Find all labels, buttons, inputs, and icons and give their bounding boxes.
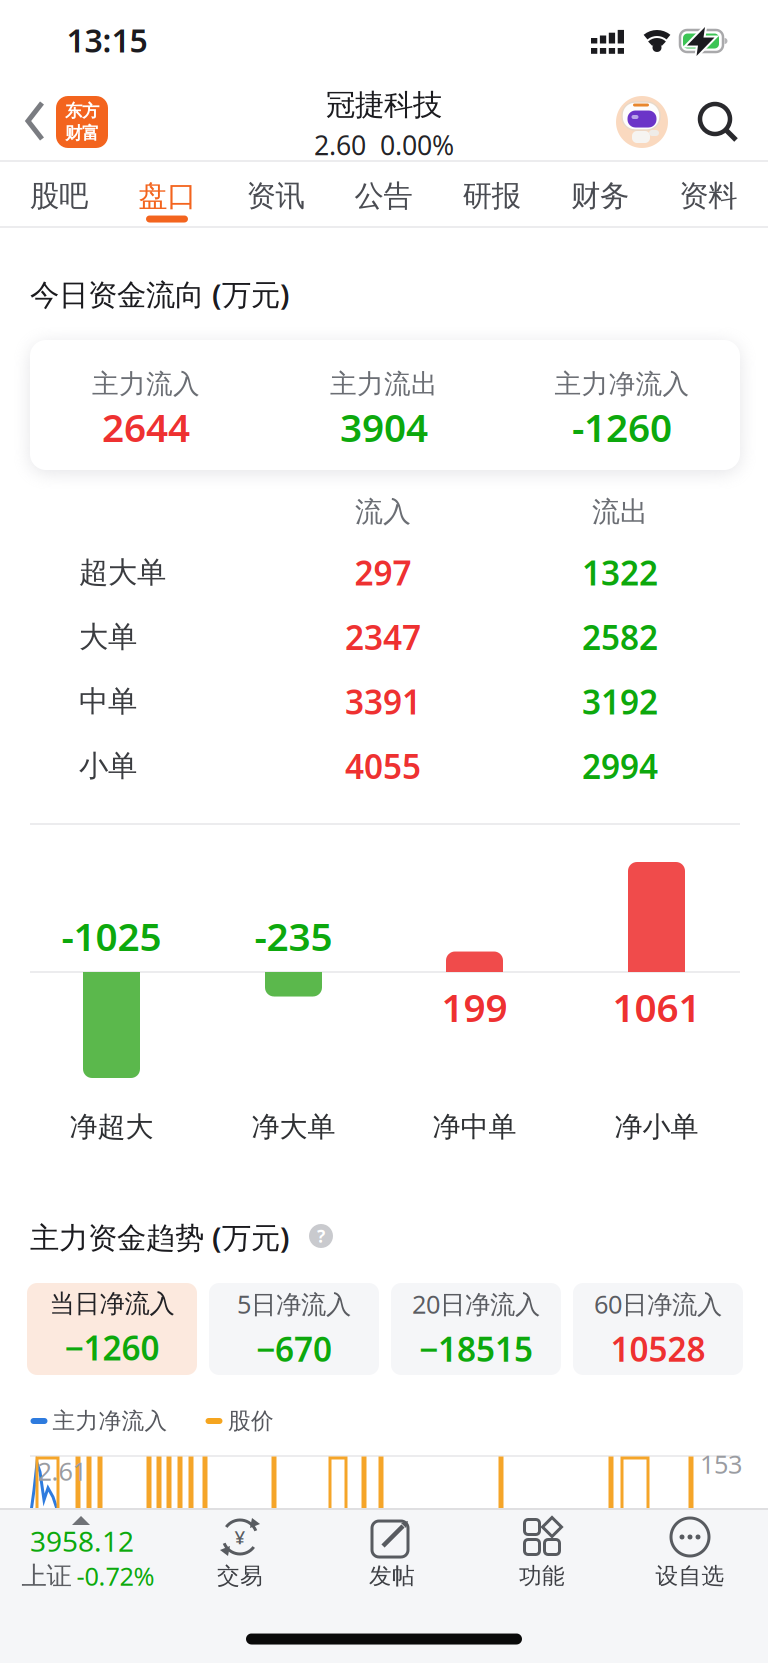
staticText: ¥ — [234, 1525, 245, 1549]
staticText: 2.60 0.00% — [314, 127, 454, 163]
button[interactable]: 资料 — [679, 178, 737, 214]
staticText: 发帖 — [369, 1562, 415, 1590]
staticText: 60日净流入 — [594, 1287, 722, 1321]
staticText: 199 — [441, 981, 507, 1033]
staticText: -235 — [254, 910, 332, 962]
staticText: 3904 — [340, 401, 428, 453]
staticText: −670 — [256, 1327, 332, 1371]
button[interactable]: 返回 — [26, 102, 46, 142]
button[interactable]: 设自选 — [625, 1512, 755, 1632]
staticText: 净超大 — [69, 1110, 153, 1144]
staticText: −1260 — [64, 1325, 159, 1370]
staticText: 主力流入 — [92, 368, 200, 400]
staticText: 2644 — [102, 401, 190, 453]
button[interactable]: 上证指数 — [0, 1510, 180, 1650]
staticText: 20日净流入 — [412, 1287, 540, 1321]
staticText: 当日净流入 — [49, 1288, 174, 1319]
staticText: 3958.12 — [30, 1522, 134, 1560]
staticText: 研报 — [463, 178, 521, 214]
button[interactable]: 交易 — [175, 1512, 305, 1632]
button[interactable]: 财务 — [571, 178, 629, 214]
staticText: 东方 — [65, 100, 99, 121]
button[interactable]: 帮助 — [309, 1224, 333, 1248]
staticText: 股吧 — [30, 178, 88, 214]
staticText: −18515 — [419, 1327, 533, 1371]
staticText: 2994 — [582, 744, 658, 788]
staticText: 盘口 — [138, 178, 196, 214]
staticText: 资讯 — [246, 178, 304, 214]
staticText: 公告 — [355, 178, 413, 214]
staticText: 流出 — [592, 495, 648, 529]
staticText: 股价 — [228, 1407, 274, 1435]
button[interactable]: 60日净流入 — [573, 1283, 743, 1375]
staticText: 中单 — [79, 683, 137, 719]
staticText: 小单 — [79, 748, 137, 784]
staticText: 13:15 — [66, 19, 147, 61]
staticText: 净大单 — [251, 1110, 335, 1144]
button[interactable]: 功能 — [477, 1512, 607, 1632]
staticText: 10528 — [610, 1327, 705, 1371]
staticText: 功能 — [519, 1562, 565, 1590]
button[interactable]: 盘口 — [138, 178, 196, 214]
button[interactable]: 东方财富 — [56, 96, 108, 148]
staticText: 1061 — [612, 981, 700, 1033]
button[interactable]: 发帖 — [327, 1512, 457, 1632]
staticText: 3391 — [345, 679, 421, 724]
staticText: 2347 — [345, 615, 421, 659]
staticText: 5日净流入 — [237, 1287, 351, 1321]
staticText: 流入 — [355, 495, 411, 529]
staticText: 2582 — [582, 615, 658, 659]
staticText: 1322 — [582, 550, 658, 595]
button[interactable]: 公告 — [355, 178, 413, 214]
staticText: 资料 — [679, 178, 737, 214]
staticText: ? — [317, 1224, 325, 1247]
button[interactable]: 搜索 — [697, 101, 739, 143]
staticText: 净中单 — [432, 1110, 516, 1144]
staticText: 今日资金流向 (万元) — [30, 274, 290, 313]
staticText: -1025 — [61, 910, 161, 962]
staticText: 超大单 — [79, 554, 166, 590]
staticText: 主力流出 — [330, 368, 438, 400]
staticText: 主力净流入 — [554, 368, 689, 400]
staticText: 主力净流入 — [52, 1407, 167, 1435]
button[interactable]: 智能助手 — [616, 96, 668, 148]
button[interactable]: 资讯 — [246, 178, 304, 214]
button[interactable]: 5日净流入 — [209, 1283, 379, 1375]
button[interactable]: 研报 — [463, 178, 521, 214]
staticText: 财务 — [571, 178, 629, 214]
staticText: 财富 — [65, 122, 99, 144]
staticText: 净小单 — [614, 1110, 698, 1144]
staticText: 4055 — [345, 744, 421, 788]
button[interactable]: 股吧 — [30, 178, 88, 214]
staticText: 297 — [354, 550, 411, 595]
button[interactable]: 20日净流入 — [391, 1283, 561, 1375]
staticText: 上证 — [21, 1560, 71, 1591]
staticText: 大单 — [79, 619, 137, 655]
staticText: -0.72% — [76, 1559, 154, 1593]
staticText: 主力资金趋势 (万元) — [30, 1217, 290, 1256]
staticText: 2.61 — [37, 1454, 86, 1488]
staticText: 交易 — [217, 1562, 263, 1590]
staticText: 设自选 — [655, 1562, 724, 1590]
button[interactable]: 当日净流入 — [27, 1283, 197, 1375]
staticText: -1260 — [572, 401, 672, 453]
staticText: 153 — [700, 1447, 742, 1481]
staticText: 3192 — [582, 679, 658, 724]
staticText: 冠捷科技 — [326, 87, 442, 123]
